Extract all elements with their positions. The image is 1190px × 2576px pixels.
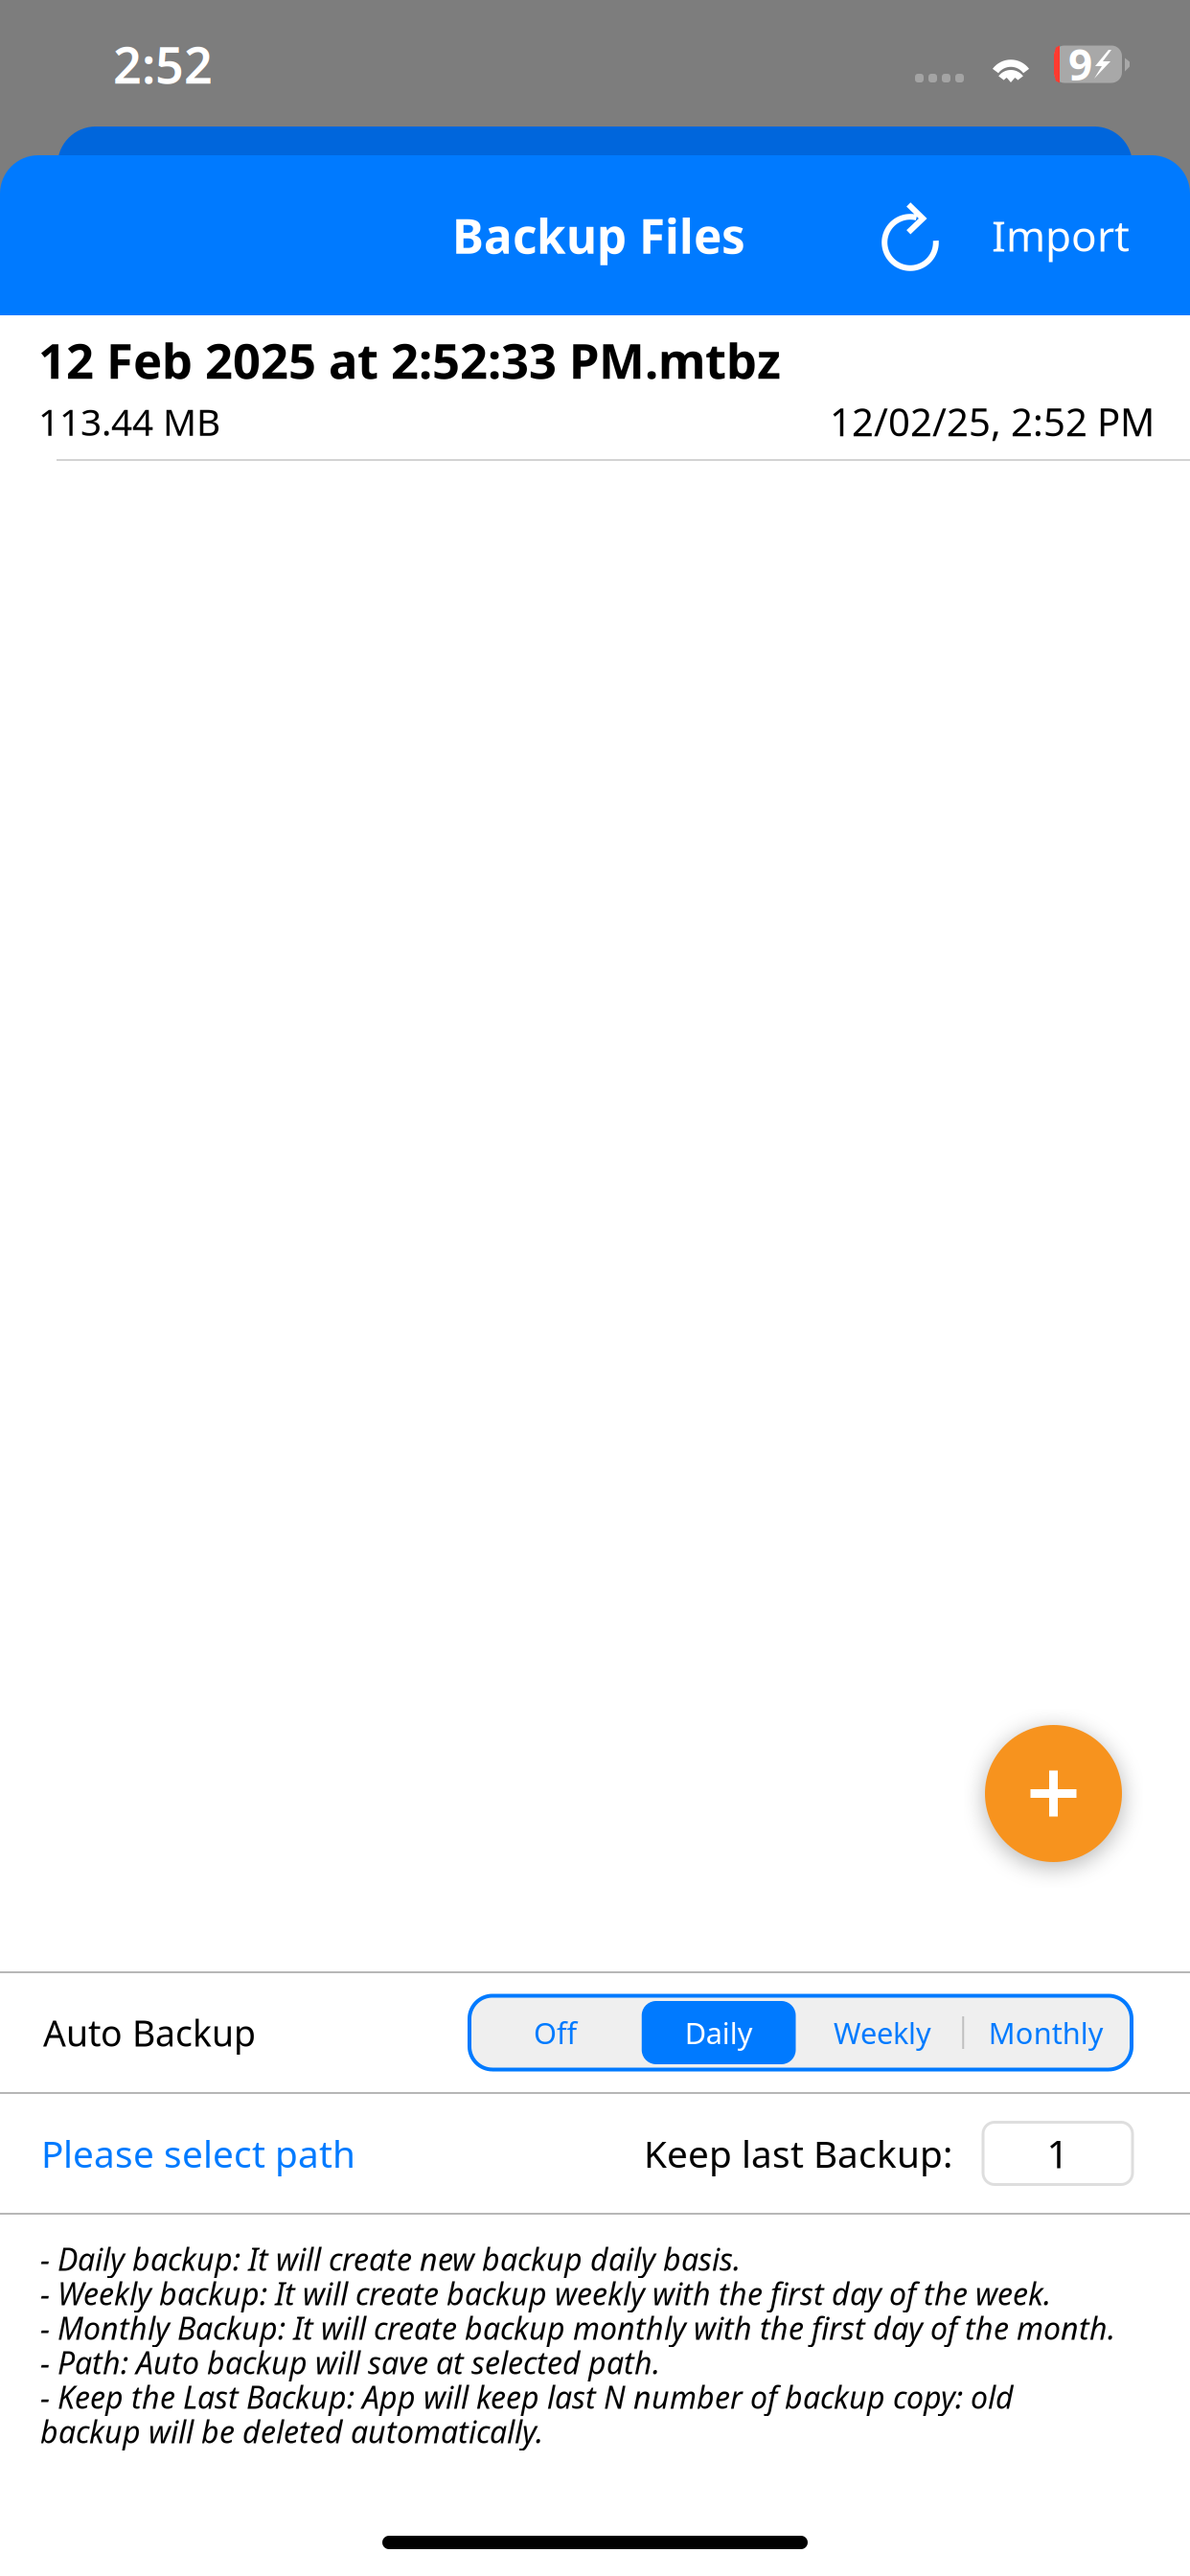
staticText: backup will be deleted automatically. — [40, 2411, 543, 2452]
button[interactable]: Import — [976, 192, 1145, 278]
staticText: 2:52 — [113, 31, 213, 97]
staticText: 113.44 MB — [38, 397, 220, 446]
staticText: - Daily backup: It will create new backu… — [40, 2238, 741, 2279]
button[interactable]: Weekly — [801, 1996, 964, 2070]
staticText: 9 — [1068, 36, 1092, 92]
staticText: Backup Files — [452, 204, 745, 267]
button[interactable]: 12 Feb 2025 at 2:52:33 PM.mtbz — [0, 315, 1190, 461]
staticText: - Keep the Last Backup: App will keep la… — [40, 2376, 1014, 2417]
staticText: Off — [534, 2013, 577, 2052]
staticText: - Weekly backup: It will create backup w… — [40, 2273, 1051, 2314]
staticText: - Monthly Backup: It will create backup … — [40, 2307, 1115, 2348]
staticText: 12/02/25, 2:52 PM — [830, 396, 1155, 447]
button[interactable]: Add backup — [985, 1725, 1122, 1862]
button[interactable]: Please select path — [41, 2111, 355, 2195]
staticText: Import — [992, 207, 1130, 263]
staticText: 12 Feb 2025 at 2:52:33 PM.mtbz — [38, 328, 781, 392]
staticText: Daily — [685, 2013, 753, 2052]
staticText: - Path: Auto backup will save at selecte… — [40, 2342, 660, 2383]
button[interactable]: Refresh — [872, 187, 953, 283]
staticText: Please select path — [41, 2129, 355, 2178]
staticText: Auto Backup — [43, 2009, 256, 2056]
staticText: Monthly — [988, 2013, 1103, 2052]
button[interactable]: Off — [473, 1996, 637, 2070]
button[interactable]: 1 — [983, 2122, 1133, 2185]
staticText: Keep last Backup: — [644, 2129, 952, 2178]
staticText: Weekly — [833, 2013, 931, 2052]
button[interactable]: Monthly — [964, 1996, 1128, 2070]
staticText: 1 — [1047, 2128, 1069, 2179]
button[interactable]: Daily — [637, 1996, 801, 2070]
